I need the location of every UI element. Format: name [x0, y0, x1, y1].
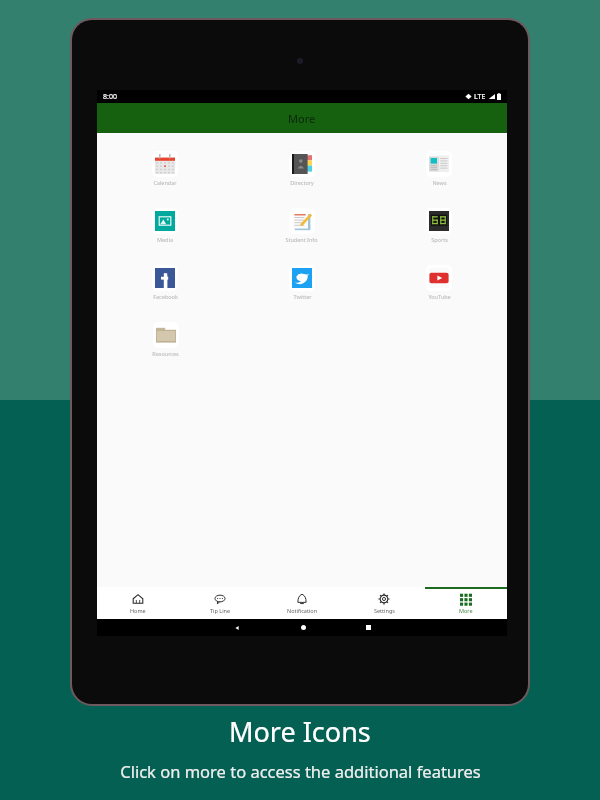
button[interactable]: More: [425, 587, 507, 619]
staticText: Notification: [287, 607, 318, 614]
button[interactable]: Back: [233, 624, 241, 632]
staticText: Settings: [374, 607, 395, 614]
button[interactable]: Calendar: [148, 149, 182, 188]
button[interactable]: Home: [301, 625, 306, 630]
button[interactable]: Sports: [422, 206, 456, 245]
staticText: Directory: [290, 179, 314, 186]
staticText: Media: [157, 236, 173, 243]
button[interactable]: Student Info: [281, 206, 322, 245]
staticText: News: [432, 179, 447, 186]
button[interactable]: Media: [148, 206, 182, 245]
staticText: More: [459, 607, 473, 614]
staticText: Facebook: [153, 293, 178, 300]
staticText: Calendar: [153, 179, 177, 186]
button[interactable]: Tip Line: [179, 587, 261, 619]
staticText: More: [288, 111, 316, 126]
staticText: Twitter: [293, 293, 312, 300]
button[interactable]: Settings: [343, 587, 425, 619]
button[interactable]: Home: [97, 587, 179, 619]
staticText: Click on more to access the additional f…: [120, 760, 481, 782]
staticText: 8:00: [103, 92, 117, 102]
button[interactable]: Notification: [261, 587, 343, 619]
button[interactable]: Directory: [285, 149, 319, 188]
staticText: More Icons: [229, 713, 371, 750]
staticText: Home: [130, 607, 146, 614]
staticText: LTE: [474, 92, 486, 102]
staticText: Tip Line: [210, 607, 231, 614]
staticText: Resources: [152, 350, 179, 357]
staticText: Student Info: [285, 236, 318, 243]
button[interactable]: Resources: [148, 320, 183, 359]
button[interactable]: News: [422, 149, 456, 188]
button[interactable]: Facebook: [148, 263, 182, 302]
staticText: Sports: [431, 236, 448, 243]
staticText: YouTube: [428, 293, 451, 300]
button[interactable]: Twitter: [285, 263, 319, 302]
button[interactable]: YouTube: [422, 263, 456, 302]
